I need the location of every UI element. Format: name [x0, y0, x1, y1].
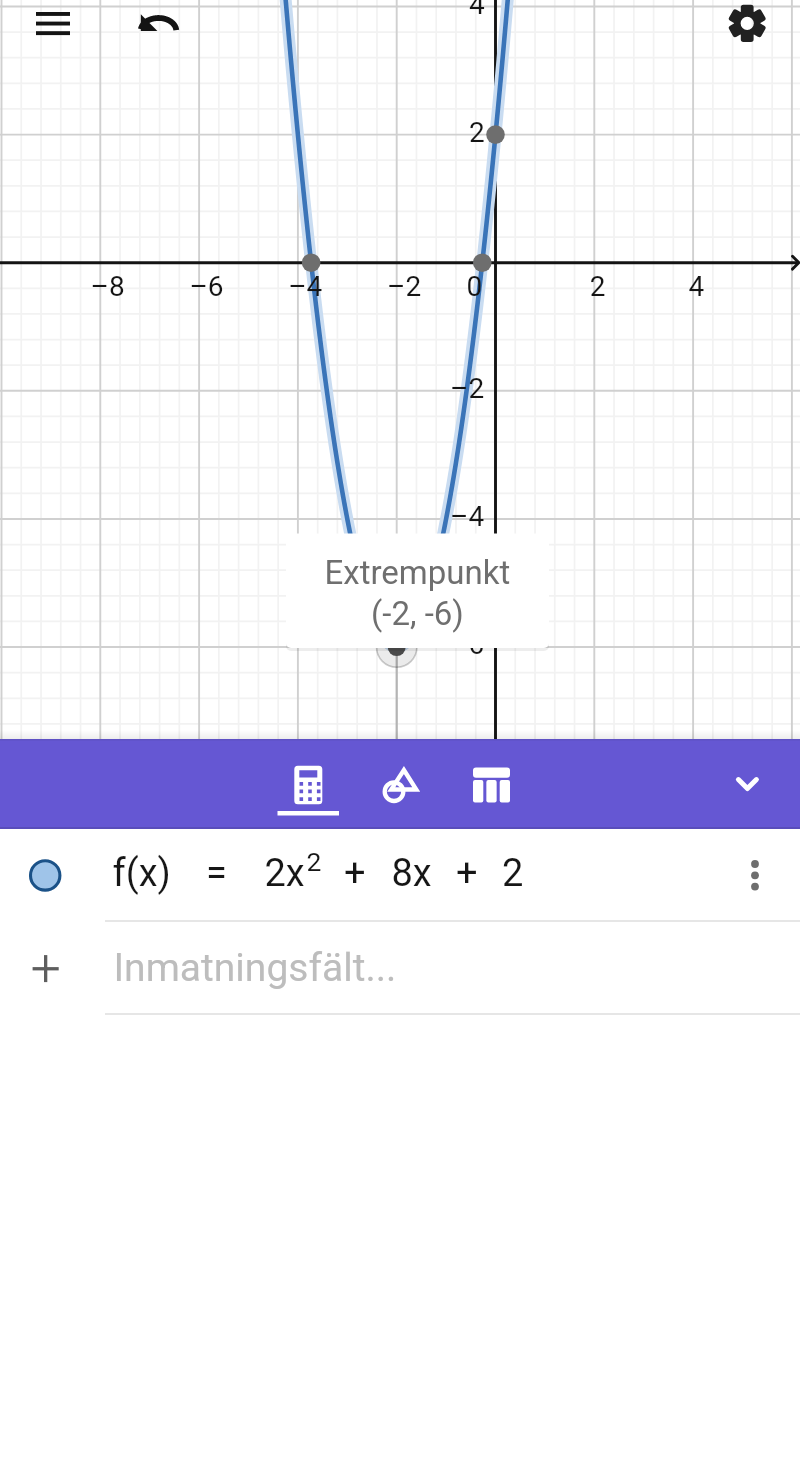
- button[interactable]: Algebra view: [276, 739, 342, 829]
- button[interactable]: Menu: [20, 0, 86, 47]
- button[interactable]: Collapse panel: [714, 739, 780, 829]
- button[interactable]: Table view: [458, 739, 524, 829]
- button[interactable]: [0, 921, 800, 1014]
- button[interactable]: Settings: [714, 0, 780, 47]
- button[interactable]: Tools: [366, 739, 432, 829]
- button[interactable]: [0, 829, 800, 921]
- button[interactable]: More options: [722, 842, 788, 908]
- button[interactable]: Undo: [123, 0, 193, 47]
